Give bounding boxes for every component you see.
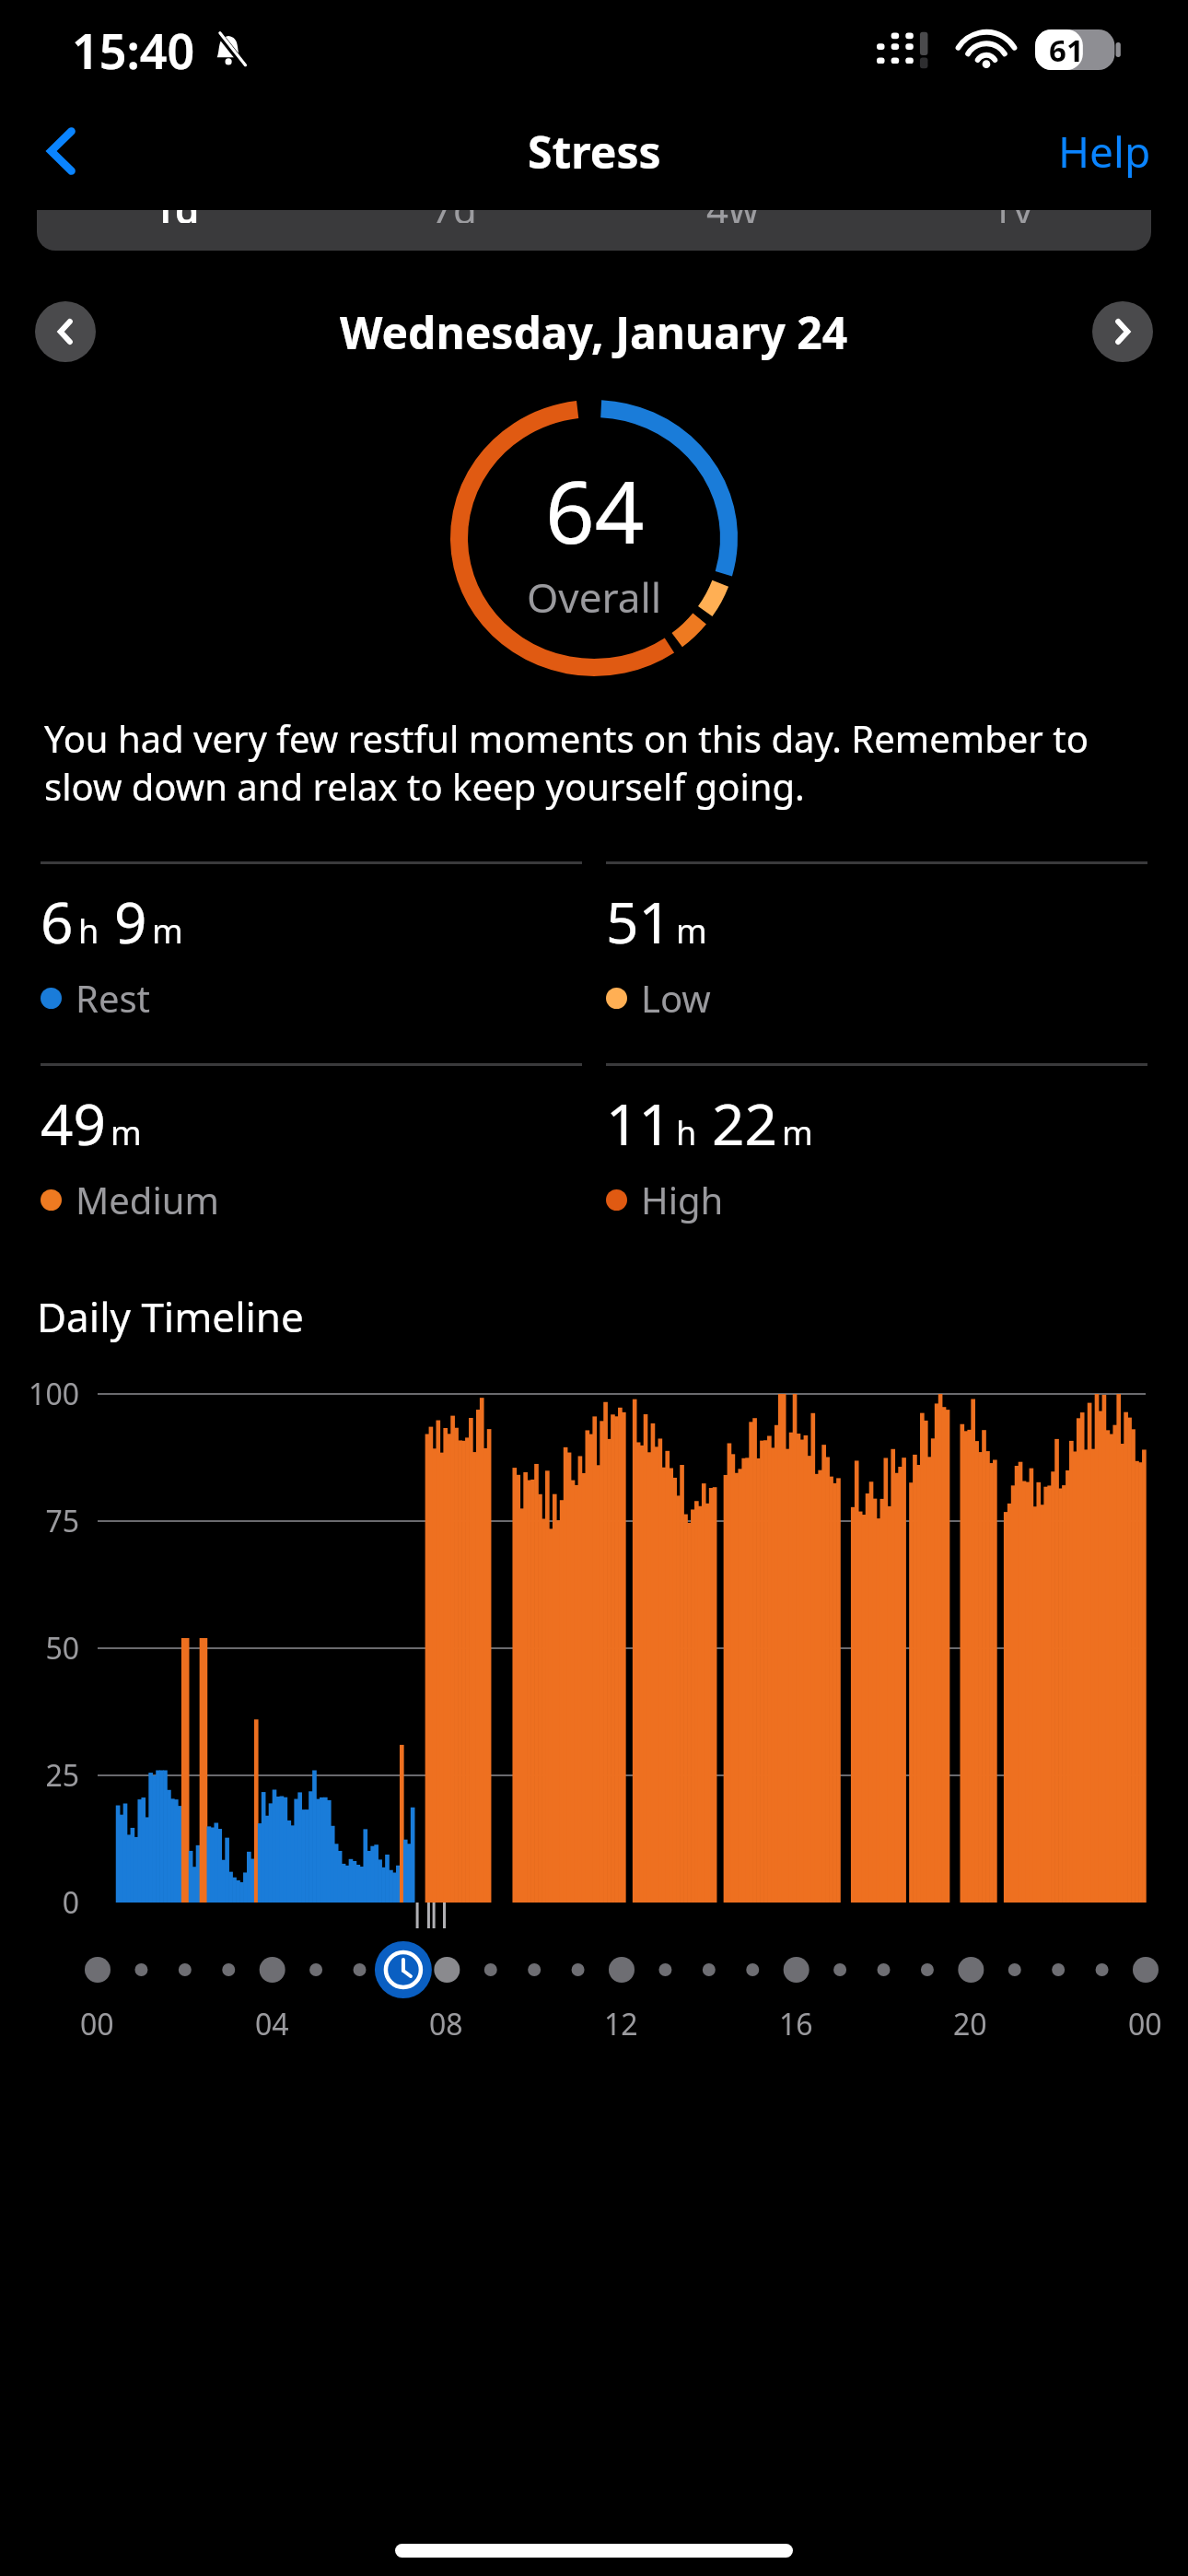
staticText: 22 xyxy=(712,1084,777,1162)
button[interactable]: Next day xyxy=(1092,301,1153,362)
staticText: m xyxy=(152,908,183,954)
staticText: 51 xyxy=(606,883,671,960)
button[interactable]: 1d xyxy=(37,210,315,251)
staticText: 75 xyxy=(45,1501,79,1541)
staticText: 0 xyxy=(62,1882,79,1923)
staticText: h xyxy=(78,908,99,954)
staticText: 4w xyxy=(706,210,760,223)
staticText: 20 xyxy=(953,2004,987,2044)
staticText: 7d xyxy=(431,210,477,223)
staticText: 49 xyxy=(41,1084,106,1162)
button[interactable]: 11 xyxy=(606,1063,1147,1224)
staticText: 00 xyxy=(1128,2004,1162,2044)
staticText: Low xyxy=(641,973,711,1023)
button[interactable]: Help xyxy=(1049,111,1160,192)
staticText: 9 xyxy=(114,883,147,960)
staticText: 25 xyxy=(45,1755,79,1796)
button[interactable]: 49 xyxy=(41,1063,582,1224)
staticText: 08 xyxy=(429,2004,463,2044)
button[interactable]: Back xyxy=(18,107,107,195)
button[interactable]: 6 xyxy=(41,861,582,1023)
staticText: Rest xyxy=(76,973,151,1023)
staticText: High xyxy=(641,1175,724,1224)
staticText: 15:40 xyxy=(72,18,195,83)
staticText: m xyxy=(111,1110,142,1155)
button[interactable]: Previous day xyxy=(35,301,96,362)
staticText: 50 xyxy=(45,1628,79,1669)
staticText: 61 xyxy=(1049,29,1084,70)
staticText: You had very few restful moments on this… xyxy=(44,713,1144,812)
staticText: 6 xyxy=(41,883,74,960)
staticText: Medium xyxy=(76,1175,219,1224)
staticText: Wednesday, January 24 xyxy=(340,302,848,362)
staticText: Help xyxy=(1058,123,1151,181)
button[interactable]: 51 xyxy=(606,861,1147,1023)
staticText: 64 xyxy=(545,451,645,569)
staticText: m xyxy=(782,1110,813,1155)
staticText: 16 xyxy=(779,2004,813,2044)
staticText: h xyxy=(676,1110,697,1155)
staticText: m xyxy=(676,908,707,954)
staticText: 1y xyxy=(991,210,1033,223)
button[interactable]: 1y xyxy=(872,210,1151,251)
staticText: Overall xyxy=(527,569,662,625)
staticText: 11 xyxy=(606,1084,671,1162)
staticText: Stress xyxy=(528,122,661,181)
staticText: 04 xyxy=(255,2004,289,2044)
staticText: Daily Timeline xyxy=(37,1289,304,1344)
staticText: 00 xyxy=(80,2004,114,2044)
staticText: 1d xyxy=(153,210,200,223)
button[interactable]: 7d xyxy=(315,210,593,251)
button[interactable]: 4w xyxy=(593,210,872,251)
staticText: 100 xyxy=(29,1374,79,1414)
staticText: 12 xyxy=(604,2004,638,2044)
